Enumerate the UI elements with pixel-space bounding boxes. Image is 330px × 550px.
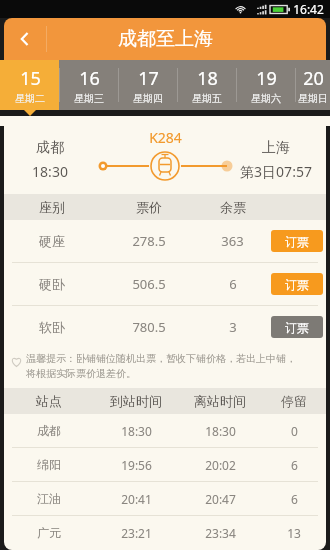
- staticText: 278.5: [132, 232, 166, 250]
- staticText: K284: [149, 128, 182, 147]
- button[interactable]: 19: [236, 60, 295, 110]
- button[interactable]: 17: [118, 60, 177, 110]
- button[interactable]: 20: [295, 60, 330, 110]
- staticText: 成都: [36, 139, 64, 157]
- staticText: 18:30: [205, 423, 236, 439]
- staticText: 18: [197, 66, 218, 91]
- staticText: 16: [79, 66, 100, 91]
- button[interactable]: 绵阳: [4, 448, 326, 481]
- staticText: 23:21: [121, 525, 152, 541]
- staticText: 20:47: [205, 491, 236, 507]
- staticText: 温馨提示：卧铺铺位随机出票，暂收下铺价格，若出上中铺，: [26, 352, 296, 365]
- staticText: 将根据实际票价退差价。: [26, 367, 136, 380]
- staticText: 到站时间: [110, 393, 162, 409]
- staticText: 江油: [37, 491, 61, 506]
- staticText: 13: [287, 525, 301, 541]
- staticText: 站点: [36, 393, 62, 409]
- staticText: 硬卧: [39, 276, 65, 292]
- staticText: 离站时间: [194, 393, 246, 409]
- staticText: 第3日07:57: [240, 162, 312, 181]
- staticText: 18:30: [32, 162, 68, 181]
- button[interactable]: 成都: [4, 414, 326, 447]
- button[interactable]: 15: [0, 60, 59, 110]
- staticText: 6: [291, 491, 298, 507]
- staticText: 3: [229, 318, 237, 336]
- button[interactable]: 订票: [271, 316, 323, 338]
- staticText: 星期五: [192, 92, 222, 105]
- staticText: 订票: [285, 320, 309, 335]
- staticText: 广元: [37, 525, 61, 540]
- staticText: 成都: [37, 423, 61, 438]
- staticText: 780.5: [132, 318, 166, 336]
- button[interactable]: 广元: [4, 516, 326, 549]
- staticText: 16:42: [293, 1, 324, 17]
- staticText: 订票: [285, 234, 309, 249]
- staticText: 成都至上海: [118, 27, 213, 51]
- staticText: 20:02: [205, 457, 236, 473]
- staticText: 停留: [281, 393, 307, 409]
- button[interactable]: Back: [4, 18, 46, 60]
- staticText: 23:34: [205, 525, 236, 541]
- staticText: 星期二: [15, 92, 45, 105]
- staticText: 软卧: [39, 319, 65, 335]
- staticText: 19:56: [121, 457, 152, 473]
- staticText: 星期六: [251, 92, 281, 105]
- staticText: 6: [291, 457, 298, 473]
- staticText: 0: [291, 423, 298, 439]
- staticText: 订票: [285, 277, 309, 292]
- staticText: 上海: [262, 139, 290, 157]
- staticText: 20: [303, 66, 324, 91]
- staticText: 星期日: [298, 92, 328, 105]
- staticText: 座别: [39, 199, 65, 215]
- staticText: 20:41: [121, 491, 152, 507]
- staticText: 星期四: [133, 92, 163, 105]
- staticText: 星期三: [74, 92, 104, 105]
- staticText: 硬座: [39, 233, 65, 249]
- staticText: 18:30: [121, 423, 152, 439]
- staticText: 余票: [220, 199, 246, 215]
- button[interactable]: 订票: [271, 230, 323, 252]
- button[interactable]: 18: [177, 60, 236, 110]
- staticText: 363: [221, 232, 244, 250]
- button[interactable]: 江油: [4, 482, 326, 515]
- staticText: 17: [138, 66, 159, 91]
- staticText: 6: [229, 275, 237, 293]
- staticText: 506.5: [132, 275, 166, 293]
- staticText: 15: [20, 66, 41, 91]
- staticText: 绵阳: [37, 457, 61, 472]
- staticText: 19: [256, 66, 277, 91]
- button[interactable]: 订票: [271, 273, 323, 295]
- staticText: 票价: [136, 199, 162, 215]
- button[interactable]: 16: [59, 60, 118, 110]
